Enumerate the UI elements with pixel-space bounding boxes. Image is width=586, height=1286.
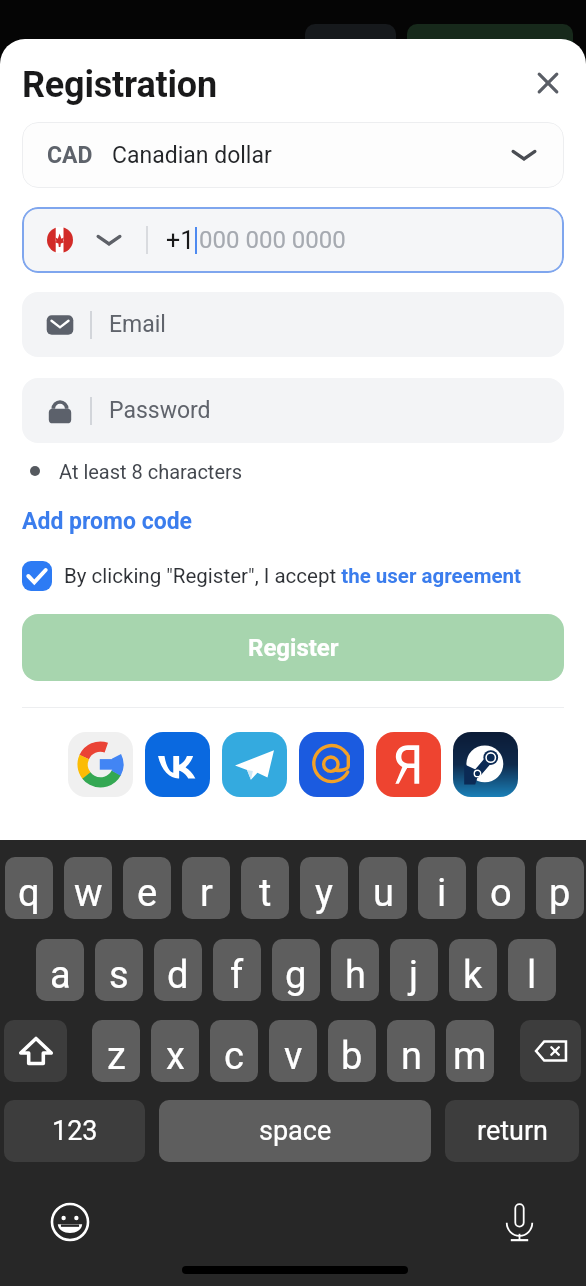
staticText: 123 [52, 1115, 98, 1147]
staticText: j [409, 953, 419, 998]
staticText: q [18, 871, 40, 916]
staticText: Registration [22, 64, 217, 106]
staticText: f [230, 953, 244, 998]
button[interactable]: Sign in with Mail.ru [299, 732, 364, 797]
button[interactable]: l [508, 939, 556, 1001]
staticText: r [200, 871, 213, 916]
staticText: m [453, 1034, 487, 1079]
staticText: y [315, 871, 333, 916]
staticText: o [490, 871, 512, 916]
button[interactable]: x [151, 1020, 199, 1082]
staticText: g [285, 953, 307, 998]
button[interactable]: return [445, 1100, 579, 1162]
button[interactable]: s [95, 939, 143, 1001]
button[interactable]: q [5, 857, 53, 919]
button[interactable]: m [446, 1020, 494, 1082]
button[interactable]: Sign in with Yandex [376, 732, 441, 797]
staticText: i [437, 871, 447, 916]
button[interactable]: w [64, 857, 112, 919]
button[interactable]: 123 [4, 1100, 145, 1162]
button[interactable]: g [272, 939, 320, 1001]
staticText: 000 000 0000 [199, 226, 346, 254]
staticText: n [401, 1034, 422, 1079]
button[interactable]: t [241, 857, 289, 919]
button[interactable]: Sign in with Google [68, 732, 133, 797]
staticText: +1 [166, 226, 195, 255]
button[interactable]: u [359, 857, 407, 919]
staticText: c [224, 1034, 244, 1079]
button[interactable]: n [387, 1020, 435, 1082]
staticText: Register [248, 634, 339, 662]
button[interactable]: r [182, 857, 230, 919]
staticText: t [259, 871, 272, 916]
button[interactable]: Register [22, 614, 564, 681]
staticText: x [166, 1034, 185, 1079]
staticText: d [167, 953, 189, 998]
button[interactable]: p [536, 857, 584, 919]
button[interactable]: c [210, 1020, 258, 1082]
button[interactable]: Sign in with Steam [453, 732, 518, 797]
staticText: Canadian dollar [112, 142, 272, 169]
button[interactable]: i [418, 857, 466, 919]
staticText: v [284, 1034, 303, 1079]
button[interactable]: h [331, 939, 379, 1001]
button[interactable]: Email [22, 292, 564, 357]
button[interactable]: b [328, 1020, 376, 1082]
staticText: l [527, 953, 537, 998]
button[interactable]: By clicking "Register", I accept the use… [22, 559, 521, 593]
button[interactable]: space [159, 1100, 431, 1162]
button[interactable]: Backspace [520, 1020, 581, 1082]
button[interactable]: CAD [22, 122, 564, 188]
staticText: h [345, 953, 366, 998]
button[interactable]: v [269, 1020, 317, 1082]
staticText: CAD [47, 142, 93, 169]
button[interactable]: Add promo code [22, 508, 193, 538]
staticText: p [549, 871, 571, 916]
button[interactable]: k [449, 939, 497, 1001]
button[interactable]: y [300, 857, 348, 919]
button[interactable]: Shift [4, 1020, 67, 1082]
staticText: Add promo code [22, 508, 193, 535]
staticText: Password [109, 397, 211, 424]
button[interactable]: Emoji [41, 1193, 98, 1250]
staticText: u [373, 871, 394, 916]
button[interactable]: Close [527, 62, 569, 104]
button[interactable]: f [213, 939, 261, 1001]
staticText: e [137, 871, 158, 916]
staticText: return [477, 1115, 548, 1147]
button[interactable]: j [390, 939, 438, 1001]
button[interactable]: Sign in with Telegram [222, 732, 287, 797]
staticText: By clicking "Register", I accept the use… [64, 564, 521, 588]
staticText: z [107, 1034, 126, 1079]
button[interactable]: e [123, 857, 171, 919]
button[interactable]: a [36, 939, 84, 1001]
button[interactable]: z [92, 1020, 140, 1082]
staticText: Email [109, 311, 166, 338]
button[interactable]: +1 [22, 207, 564, 273]
staticText: s [109, 953, 129, 998]
button[interactable]: Sign in with VK [145, 732, 210, 797]
staticText: space [259, 1115, 332, 1147]
button[interactable]: d [154, 939, 202, 1001]
staticText: w [74, 871, 103, 916]
button[interactable]: Password [22, 378, 564, 443]
button[interactable]: o [477, 857, 525, 919]
staticText: b [341, 1034, 363, 1079]
staticText: k [463, 953, 483, 998]
staticText: At least 8 characters [59, 460, 243, 483]
button[interactable]: Voice input [491, 1193, 548, 1250]
staticText: a [50, 953, 71, 998]
